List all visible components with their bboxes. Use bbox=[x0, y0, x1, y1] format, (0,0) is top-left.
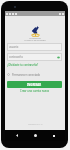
staticText: Crear una cuenta nueva bbox=[20, 89, 50, 93]
button[interactable]: INGRESAR bbox=[7, 81, 62, 88]
button[interactable]: Permanecer conectado bbox=[7, 71, 62, 78]
button[interactable]: Show password bbox=[57, 56, 60, 59]
button[interactable]: ¿Olvidaste tu contraseña? bbox=[7, 63, 39, 67]
staticText: usuario bbox=[9, 45, 19, 49]
button[interactable]: Back bbox=[10, 130, 24, 141]
button[interactable]: usuario bbox=[7, 43, 62, 51]
staticText: INGRESAR bbox=[27, 83, 42, 87]
button[interactable]: contraseña bbox=[7, 53, 62, 61]
staticText: ¿Olvidaste tu contraseña? bbox=[7, 63, 39, 67]
button[interactable]: Home bbox=[28, 130, 42, 141]
button[interactable]: Recent apps bbox=[47, 130, 61, 141]
staticText: contraseña bbox=[9, 55, 23, 59]
staticText: UNIVERSIDAD NACIONAL DE COLOMBIA bbox=[24, 37, 46, 42]
staticText: Versión 2.1.4 bbox=[28, 122, 43, 125]
button[interactable]: Crear una cuenta nueva bbox=[20, 89, 50, 93]
staticText: Permanecer conectado bbox=[12, 73, 41, 77]
